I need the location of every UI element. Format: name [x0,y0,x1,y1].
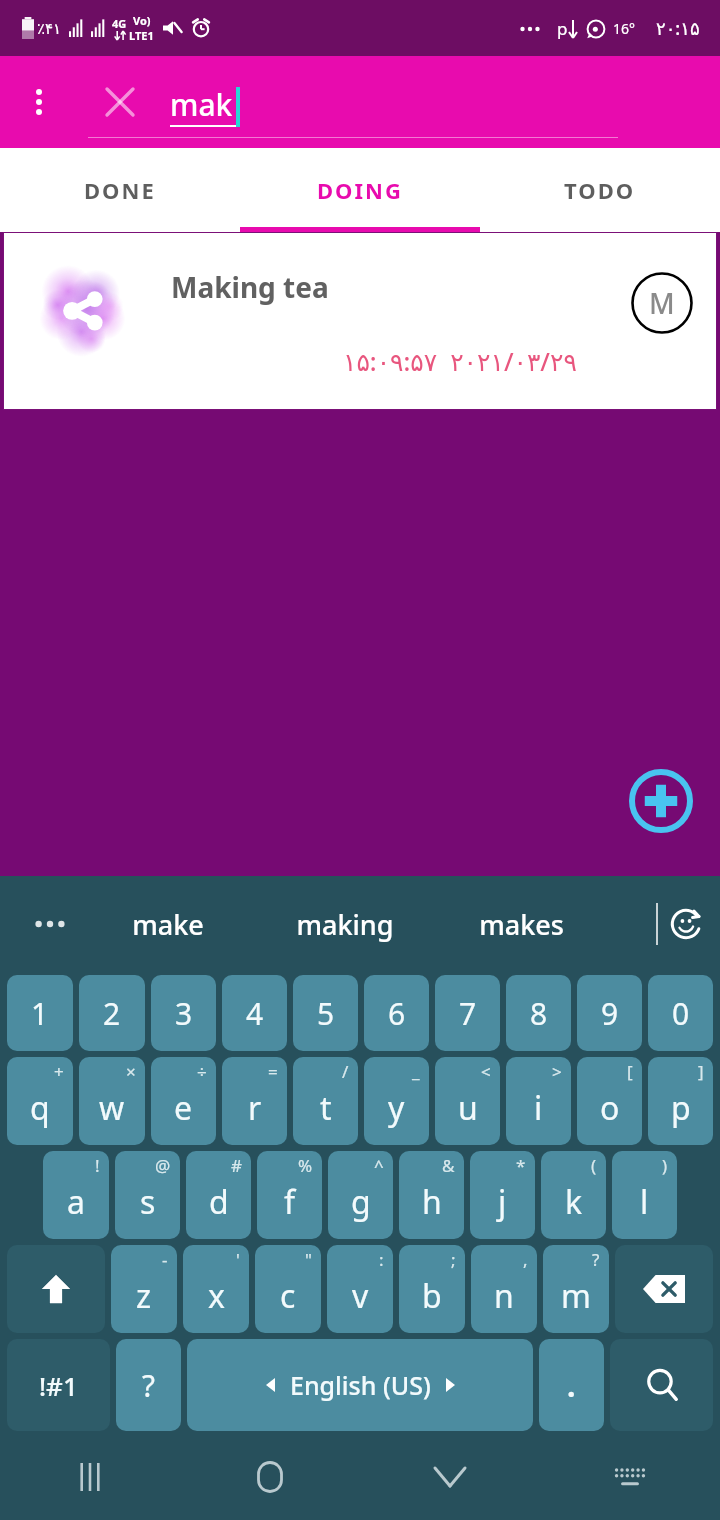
staticText: ] [698,1060,704,1083]
button[interactable]: TODO [480,148,720,232]
button[interactable]: making [256,876,433,972]
button[interactable]: Clear search [88,70,152,134]
button[interactable]: 3 [151,975,216,1051]
button[interactable]: ^ [328,1151,393,1239]
staticText: 2 [103,993,121,1034]
staticText: DONE [84,175,156,205]
button[interactable]: makes [433,876,610,972]
button[interactable]: / [293,1057,358,1145]
button[interactable]: Search [610,1339,713,1431]
button[interactable]: 2 [79,975,145,1051]
button[interactable]: % [257,1151,322,1239]
staticText: b [422,1274,442,1318]
staticText: 5 [317,993,335,1034]
staticText: ! [95,1154,100,1177]
button[interactable]: ! [43,1151,109,1239]
staticText: r [248,1086,262,1130]
staticText: . [567,1365,576,1406]
staticText: , [523,1248,528,1271]
button[interactable]: . [539,1339,604,1431]
staticText: 6 [388,993,406,1034]
button[interactable]: _ [364,1057,429,1145]
staticText: make [132,906,204,943]
staticText: o [600,1086,620,1130]
button[interactable]: @ [115,1151,180,1239]
button[interactable]: 7 [435,975,500,1051]
button[interactable]: - [111,1245,177,1333]
staticText: y [388,1086,405,1130]
button[interactable]: 6 [364,975,429,1051]
staticText: !#1 [39,1368,78,1403]
button[interactable]: DOING [240,148,480,232]
staticText: q [30,1086,50,1130]
button[interactable]: ) [612,1151,677,1239]
staticText: v [352,1274,369,1318]
button[interactable]: 0 [648,975,713,1051]
button[interactable]: ? [116,1339,181,1431]
button[interactable]: 1 [7,975,73,1051]
staticText: ٪۴۱ [37,20,62,37]
button[interactable]: 5 [293,975,358,1051]
button[interactable]: > [506,1057,571,1145]
button[interactable]: English (US) [187,1339,533,1431]
button[interactable]: More suggestions [26,900,74,948]
button[interactable]: , [471,1245,537,1333]
button[interactable]: # [186,1151,251,1239]
button[interactable]: ( [541,1151,606,1239]
button[interactable]: + [7,1057,73,1145]
staticText: _ [412,1060,420,1083]
button[interactable]: ; [399,1245,465,1333]
button[interactable]: Backspace [615,1245,713,1333]
staticText: ۱۵:۰۹:۵۷ ۲۰۲۱/۰۳/۲۹ [343,344,577,378]
staticText: s [140,1180,156,1224]
button[interactable]: [ [577,1057,642,1145]
button[interactable]: Emoji [662,900,710,948]
staticText: f [284,1180,296,1224]
staticText: ( [591,1154,597,1177]
staticText: M [649,284,675,322]
button[interactable]: 9 [577,975,642,1051]
button[interactable]: ] [648,1057,713,1145]
button[interactable]: More options [10,73,68,131]
staticText: 0 [672,993,690,1034]
button[interactable]: !#1 [7,1339,110,1431]
staticText: ? [592,1248,600,1271]
button[interactable]: × [79,1057,145,1145]
button[interactable]: = [222,1057,287,1145]
button[interactable]: ' [183,1245,249,1333]
staticText: % [298,1154,313,1177]
button[interactable]: Making tea [3,232,717,410]
staticText: @ [155,1154,171,1177]
button[interactable]: ÷ [151,1057,216,1145]
button[interactable]: Recents [0,1434,180,1520]
button[interactable]: < [435,1057,500,1145]
staticText: i [534,1086,543,1130]
staticText: a [67,1180,85,1224]
button[interactable]: * [470,1151,535,1239]
staticText: 4G [112,16,127,31]
staticText: mak [170,84,233,125]
staticText: < [481,1060,491,1083]
button[interactable]: 8 [506,975,571,1051]
staticText: : [379,1248,384,1271]
staticText: w [99,1086,125,1130]
staticText: / [342,1060,349,1083]
button[interactable]: " [255,1245,321,1333]
button[interactable]: make [80,876,256,972]
button[interactable]: Home [180,1434,360,1520]
button[interactable]: Shift [7,1245,105,1333]
button[interactable]: & [399,1151,464,1239]
staticText: DOING [317,175,403,205]
button[interactable]: DONE [0,148,240,232]
button[interactable]: Add task [628,768,694,834]
staticText: u [458,1086,478,1130]
button[interactable]: 4 [222,975,287,1051]
staticText: Vo) [133,13,151,28]
button[interactable]: Change keyboard [540,1434,720,1520]
button[interactable]: Owner M [631,272,693,334]
button[interactable]: ? [543,1245,609,1333]
staticText: × [126,1060,136,1083]
button[interactable]: : [327,1245,393,1333]
staticText: * [516,1154,526,1177]
button[interactable]: Hide keyboard [360,1434,540,1520]
